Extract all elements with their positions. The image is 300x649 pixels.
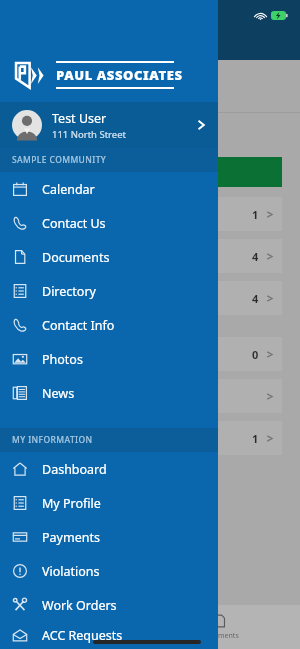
staticText: Documents xyxy=(42,249,110,266)
staticText: 4 xyxy=(252,291,259,306)
staticText: SAMPLE COMMUNITY xyxy=(12,154,107,166)
staticText: Violations xyxy=(42,563,100,580)
button[interactable]: Directory xyxy=(0,274,218,308)
button[interactable]: ACC Requests xyxy=(0,622,218,649)
staticText: 111 North Street xyxy=(52,128,126,141)
staticText: News xyxy=(42,385,75,402)
button[interactable]: Photos xyxy=(0,342,218,376)
staticText: PAUL ASSOCIATES xyxy=(56,66,183,84)
button[interactable]: Calendar xyxy=(0,172,218,206)
staticText: Test User xyxy=(52,110,107,127)
staticText: Account Info › xyxy=(51,128,114,140)
button[interactable]: Account Info › xyxy=(22,123,142,145)
staticText: Switch Account xyxy=(108,87,193,102)
button[interactable]: Dashboard xyxy=(0,452,218,486)
button[interactable]: Test User xyxy=(0,102,218,148)
staticText: Contact Us xyxy=(42,215,106,232)
staticText: 4 xyxy=(252,249,259,264)
staticText: My Profile xyxy=(42,495,101,512)
button[interactable]: 1 xyxy=(18,421,282,455)
button[interactable] xyxy=(18,157,282,187)
button[interactable]: Payments xyxy=(0,520,218,554)
button[interactable]: 4 xyxy=(18,281,282,315)
staticText: Contact Info xyxy=(42,317,115,334)
button[interactable]: 1 xyxy=(18,197,282,231)
staticText: Payments xyxy=(42,529,100,546)
button[interactable]: My Profile xyxy=(0,486,218,520)
staticText: 1 xyxy=(252,431,259,446)
button[interactable]: Work Orders xyxy=(0,588,218,622)
button[interactable]: Violations xyxy=(0,554,218,588)
staticText: 1 xyxy=(252,207,259,222)
button[interactable]: Documents xyxy=(190,614,250,641)
staticText: 0 xyxy=(252,347,259,362)
staticText: Directory xyxy=(42,283,96,300)
staticText: Documents xyxy=(201,631,239,641)
button[interactable]: Contact Us xyxy=(0,206,218,240)
button[interactable]: 0 xyxy=(18,337,282,371)
staticText: Work Orders xyxy=(42,597,117,614)
button[interactable]: Documents xyxy=(0,240,218,274)
staticText: Dashboard xyxy=(42,461,107,478)
button[interactable]: News xyxy=(0,376,218,410)
staticText: MY INFORMATION xyxy=(12,434,93,446)
button[interactable]: Contact Info xyxy=(0,308,218,342)
staticText: Photos xyxy=(42,351,83,368)
button[interactable] xyxy=(18,379,282,413)
button[interactable]: Switch Account xyxy=(0,76,300,112)
button[interactable]: 4 xyxy=(18,239,282,273)
staticText: Calendar xyxy=(42,181,95,198)
staticText: ACC Requests xyxy=(42,627,123,644)
